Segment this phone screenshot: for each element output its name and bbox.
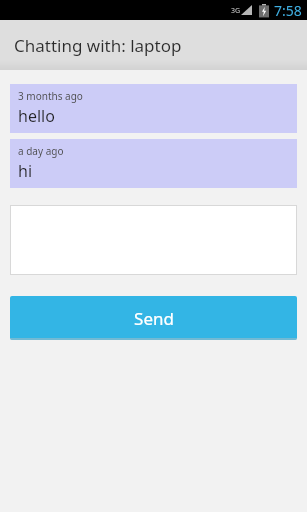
button[interactable]: 3 months ago [10,84,297,133]
staticText: a day ago [18,144,64,158]
staticText: 7:58 [274,1,302,20]
staticText: Chatting with: laptop [14,34,182,57]
staticText: hi [18,160,33,182]
button[interactable]: Send [10,296,297,340]
button[interactable]: a day ago [10,139,297,188]
staticText: 3G [231,6,241,16]
button[interactable]: Message input [10,205,297,275]
staticText: hello [18,105,55,127]
staticText: Send [134,307,174,330]
staticText: 3 months ago [18,89,83,103]
